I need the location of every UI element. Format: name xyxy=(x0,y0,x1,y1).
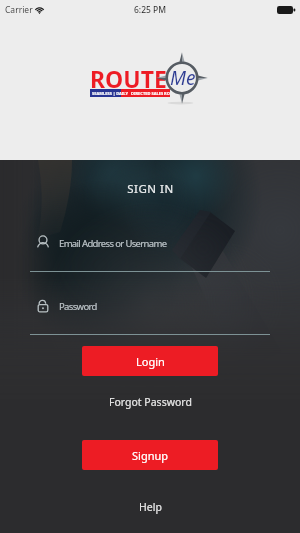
staticText: 6:25 PM xyxy=(134,4,167,16)
staticText: Signup xyxy=(132,448,169,463)
button[interactable]: Login xyxy=(82,346,218,376)
staticText: Carrier xyxy=(5,4,33,16)
staticText: ROUTE xyxy=(90,63,167,94)
staticText: Help xyxy=(139,500,162,514)
button[interactable]: Signup xyxy=(82,440,218,470)
button[interactable]: Help xyxy=(127,497,174,517)
staticText: Forgot Password xyxy=(109,395,192,409)
button[interactable]: Forgot Password xyxy=(99,392,202,412)
staticText: Login xyxy=(136,354,165,369)
button[interactable]: Email Address or Username xyxy=(30,234,270,272)
staticText: SIGN IN xyxy=(127,181,174,197)
staticText: DIRECTED SALES ROUTING xyxy=(131,91,170,96)
staticText: SEAMLESS | DAILY xyxy=(92,91,128,96)
button[interactable]: Password xyxy=(30,297,270,335)
staticText: Password xyxy=(59,300,97,313)
staticText: Me xyxy=(170,65,196,91)
staticText: Email Address or Username xyxy=(59,237,167,250)
